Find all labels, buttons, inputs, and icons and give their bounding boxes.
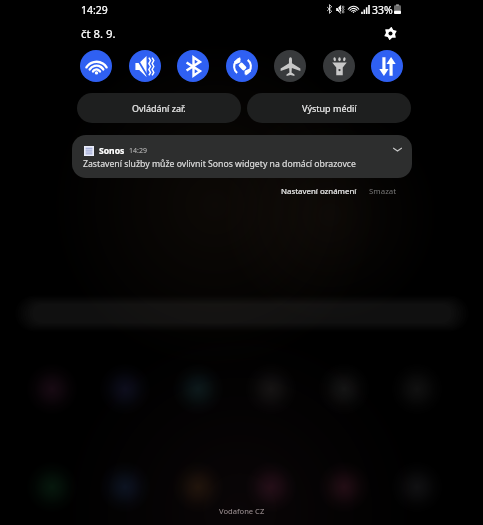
- button[interactable]: Wi-Fi: [80, 50, 112, 82]
- staticText: Ovládání zař.: [132, 102, 186, 114]
- button[interactable]: Ovládání zař.: [77, 93, 241, 123]
- button[interactable]: Airplane mode: [274, 50, 306, 82]
- staticText: Sonos: [99, 145, 125, 157]
- button[interactable]: Expand: [389, 141, 405, 157]
- button[interactable]: Mobile data: [371, 50, 403, 82]
- button[interactable]: Nastavení oznámení: [278, 183, 360, 200]
- button[interactable]: Bluetooth: [177, 50, 209, 82]
- button[interactable]: Auto rotate: [226, 50, 258, 82]
- staticText: 14:29: [129, 146, 147, 156]
- staticText: 33%: [372, 3, 393, 15]
- button[interactable]: Výstup médií: [247, 93, 411, 123]
- staticText: Nastavení oznámení: [281, 186, 357, 197]
- button[interactable]: Sound: [129, 50, 161, 82]
- staticText: 14:29: [81, 3, 108, 17]
- staticText: Zastavení služby může ovlivnit Sonos wid…: [83, 158, 356, 170]
- button[interactable]: Settings: [381, 24, 400, 43]
- staticText: Výstup médií: [302, 102, 357, 114]
- button[interactable]: Flashlight: [323, 50, 355, 82]
- staticText: čt 8. 9.: [81, 26, 116, 42]
- button[interactable]: Smazat: [366, 183, 400, 200]
- button[interactable]: Sonos: [72, 135, 412, 178]
- staticText: Vodafone CZ: [219, 506, 265, 516]
- staticText: Smazat: [369, 186, 397, 197]
